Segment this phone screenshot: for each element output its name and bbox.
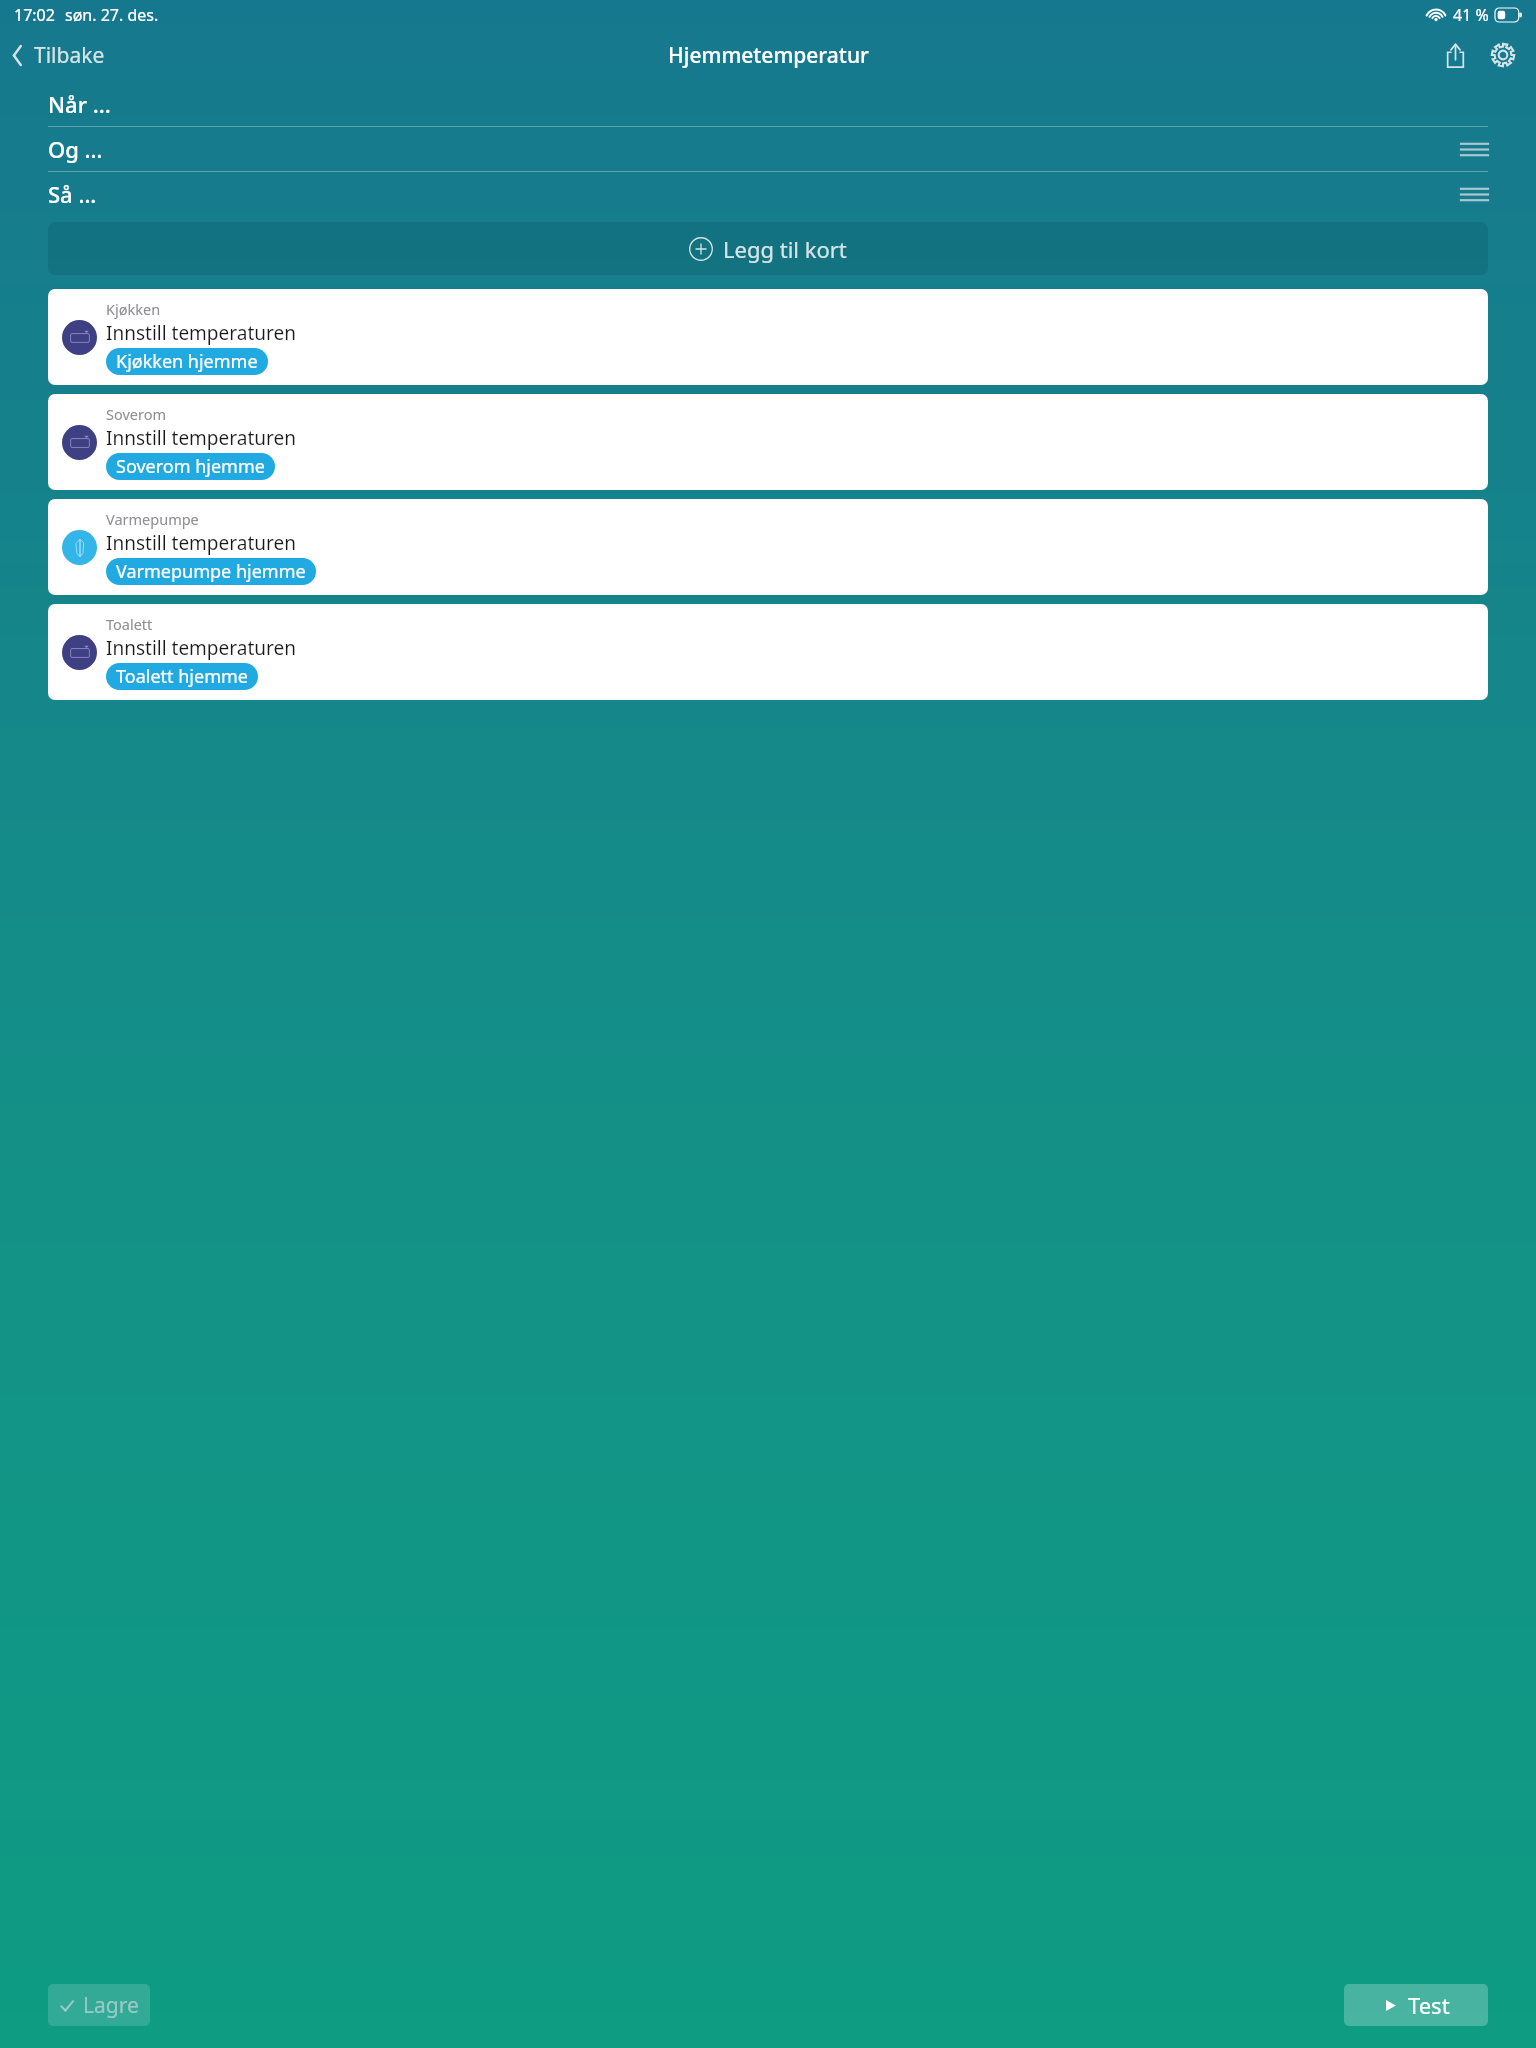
- button[interactable]: Lagre: [48, 1984, 150, 2026]
- button[interactable]: Og ...: [48, 127, 1488, 171]
- staticText: Toalett: [106, 614, 153, 634]
- button[interactable]: Så ...: [48, 172, 1488, 216]
- button[interactable]: Test: [1344, 1984, 1488, 2026]
- staticText: Innstill temperaturen: [106, 635, 296, 661]
- staticText: Så ...: [48, 179, 97, 209]
- staticText: Kjøkken: [106, 299, 161, 319]
- staticText: Test: [1408, 1990, 1450, 2020]
- staticText: Når ...: [48, 89, 111, 119]
- button[interactable]: Innstillinger: [1482, 34, 1524, 76]
- staticText: Lagre: [83, 1991, 139, 2020]
- button[interactable]: Når ...: [48, 81, 1488, 126]
- staticText: Soverom: [106, 404, 167, 424]
- button[interactable]: Varmepumpe: [48, 499, 1488, 595]
- button[interactable]: Soverom: [48, 394, 1488, 490]
- staticText: 17:02: [14, 4, 55, 26]
- staticText: søn. 27. des.: [65, 4, 159, 26]
- staticText: Legg til kort: [723, 234, 847, 264]
- staticText: Varmepumpe hjemme: [116, 559, 306, 584]
- button[interactable]: Toalett: [48, 604, 1488, 700]
- button[interactable]: Legg til kort: [48, 222, 1488, 275]
- staticText: Innstill temperaturen: [106, 425, 296, 451]
- staticText: Kjøkken hjemme: [116, 349, 258, 374]
- staticText: 41 %: [1453, 4, 1489, 26]
- staticText: Hjemmetemperatur: [668, 41, 869, 70]
- staticText: Tilbake: [34, 41, 105, 70]
- button[interactable]: Tilbake: [0, 35, 117, 76]
- staticText: Soverom hjemme: [116, 454, 265, 479]
- staticText: Toalett hjemme: [116, 664, 248, 689]
- staticText: Varmepumpe: [106, 509, 199, 529]
- button[interactable]: Del: [1434, 34, 1476, 76]
- button[interactable]: Kjøkken: [48, 289, 1488, 385]
- staticText: Innstill temperaturen: [106, 320, 296, 346]
- staticText: Og ...: [48, 134, 103, 164]
- staticText: Innstill temperaturen: [106, 530, 296, 556]
